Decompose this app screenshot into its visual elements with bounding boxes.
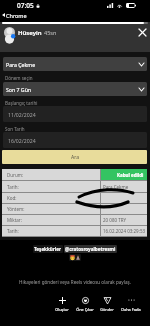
staticText: Daha Fazla <box>121 307 141 312</box>
staticText: Durum: <box>7 172 24 178</box>
button[interactable]: Chrome'a dön <box>2 12 27 18</box>
staticText: 16/02/2024 <box>8 137 36 144</box>
staticText: Hüseyin <box>18 29 42 37</box>
button[interactable]: Daha Fazla <box>120 295 142 313</box>
button[interactable]: Gönder <box>96 295 118 313</box>
button[interactable]: 16/02/2024 <box>3 132 147 148</box>
staticText: 20 080 TRY <box>103 217 127 223</box>
staticText: Gönder <box>100 307 114 312</box>
button[interactable]: Ara <box>2 150 147 164</box>
staticText: @cratosroyalbetresmi <box>65 246 116 252</box>
button[interactable]: Para Çekme <box>3 57 147 71</box>
button[interactable]: Öne Çıkar <box>74 295 96 313</box>
button[interactable]: Son 7 Gün <box>3 82 147 96</box>
button[interactable]: 11/02/2024 <box>3 106 147 122</box>
staticText: Ara <box>71 154 79 161</box>
staticText: Dönem seçin <box>5 75 33 81</box>
staticText: 16.02.2024 03:29:53 <box>103 228 146 234</box>
staticText: Kod: <box>7 195 17 201</box>
staticText: Hikayeleri gönderi veya Reels videosu ol… <box>19 279 131 285</box>
staticText: 07:05 <box>17 1 34 10</box>
staticText: Teşekkürler <box>34 246 62 252</box>
staticText: Para Çekme <box>103 184 129 190</box>
staticText: Tarih: <box>7 184 19 190</box>
staticText: Oluştur <box>55 307 69 312</box>
staticText: Başlangıç tarihi <box>5 100 38 106</box>
staticText: Miktar: <box>7 217 22 223</box>
button[interactable]: Oluştur <box>51 295 73 313</box>
staticText: Son Tarih <box>5 126 25 132</box>
button[interactable]: Kapat <box>135 25 149 39</box>
staticText: Son 7 Gün <box>6 86 32 93</box>
staticText: Öne Çıkar <box>76 307 94 312</box>
staticText: Tarih: <box>7 228 19 234</box>
staticText: Chrome <box>6 12 27 18</box>
button[interactable]: Hüseyin <box>4 27 57 38</box>
staticText: 45sn <box>44 29 57 36</box>
staticText: Kabul edildi <box>117 172 144 178</box>
staticText: 11/02/2024 <box>8 111 36 118</box>
staticText: Para Çekme <box>6 61 36 68</box>
staticText: Yöntem: <box>7 206 25 212</box>
